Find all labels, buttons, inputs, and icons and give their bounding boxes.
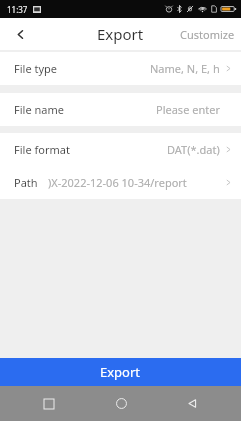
staticText: Please enter xyxy=(156,102,220,117)
staticText: File name xyxy=(14,102,64,117)
button[interactable]: Customize xyxy=(174,18,241,50)
staticText: 11:37 xyxy=(7,4,28,15)
button[interactable]: Export xyxy=(0,358,241,386)
button[interactable]: File format xyxy=(0,133,241,166)
button[interactable]: Home xyxy=(98,386,144,421)
staticText: Export xyxy=(97,24,144,44)
staticText: File format xyxy=(14,142,70,157)
staticText: )X-2022-12-06 10-34/report xyxy=(48,175,220,190)
staticText: Customize xyxy=(180,27,235,42)
button[interactable]: Back xyxy=(169,386,215,421)
staticText: File type xyxy=(14,61,57,76)
button[interactable]: Back xyxy=(0,18,40,50)
button[interactable]: File type xyxy=(0,52,241,85)
button[interactable]: Path xyxy=(0,166,241,199)
button[interactable]: Recents xyxy=(26,386,72,421)
staticText: Export xyxy=(100,363,141,381)
staticText: DAT(*.dat) xyxy=(167,142,220,157)
button[interactable]: File name xyxy=(0,93,241,126)
staticText: Name, N, E, h xyxy=(150,61,220,76)
staticText: Path xyxy=(14,175,38,190)
